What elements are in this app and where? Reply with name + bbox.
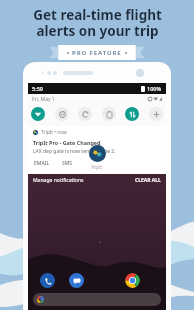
- staticText: CLEAR ALL: [135, 177, 161, 184]
- button[interactable]: Messages: [69, 273, 84, 288]
- button[interactable]: TripIt • now: [28, 126, 166, 174]
- button[interactable]: Toggle off: [102, 107, 116, 121]
- button[interactable]: Manage notifications: [33, 177, 84, 184]
- staticText: SMS: [62, 160, 73, 167]
- button[interactable]: Toggle on: [31, 107, 45, 121]
- staticText: TripIt Pro - Gate Changed: [33, 139, 101, 146]
- staticText: LAX dep gate is now term 3, gate 2.: [33, 148, 116, 155]
- staticText: Get real-time flight alerts on your trip: [33, 6, 162, 40]
- button[interactable]: CLEAR ALL: [135, 177, 161, 184]
- button[interactable]: [33, 293, 161, 306]
- button[interactable]: Phone: [40, 273, 55, 288]
- button[interactable]: TripIt: [89, 145, 106, 162]
- button[interactable]: Toggle off: [55, 107, 69, 121]
- button[interactable]: SMS: [61, 159, 74, 168]
- button[interactable]: Chrome: [125, 273, 140, 288]
- staticText: 5:59: [32, 85, 43, 92]
- staticText: Fri, May 1: [32, 96, 55, 103]
- button[interactable]: Toggle off: [149, 107, 163, 121]
- staticText: 100%: [147, 85, 162, 92]
- staticText: TripIt: [91, 164, 103, 170]
- staticText: Manage notifications: [33, 177, 84, 184]
- staticText: TripIt • now: [41, 129, 67, 136]
- staticText: PRO FEATURE: [72, 49, 122, 57]
- button[interactable]: Toggle on: [125, 107, 139, 121]
- staticText: EMAIL: [34, 160, 50, 167]
- button[interactable]: EMAIL: [33, 159, 51, 168]
- button[interactable]: Toggle off: [78, 107, 92, 121]
